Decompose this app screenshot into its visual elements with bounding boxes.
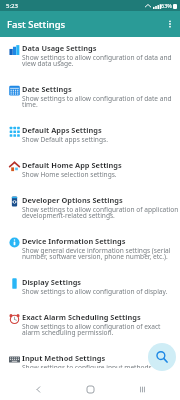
staticText: Date Settings bbox=[22, 84, 72, 94]
button[interactable]: Display Settings bbox=[0, 271, 180, 306]
button[interactable]: Back bbox=[29, 380, 47, 398]
staticText: Show settings to allow configuration of … bbox=[22, 205, 180, 220]
button[interactable]: Input Method Settings bbox=[0, 347, 180, 378]
staticText: Developer Options Settings bbox=[22, 195, 123, 205]
staticText: Default Home App Settings bbox=[22, 160, 122, 170]
button[interactable]: Device Information Settings bbox=[0, 230, 180, 271]
staticText: Input Method Settings bbox=[22, 353, 106, 363]
staticText: Show Home selection settings. bbox=[22, 170, 117, 179]
staticText: Fast Settings bbox=[7, 18, 66, 31]
button[interactable]: Home bbox=[81, 380, 99, 398]
button[interactable]: More options bbox=[160, 14, 180, 34]
staticText: Display Settings bbox=[22, 277, 82, 287]
button[interactable]: Exact Alarm Scheduling Settings bbox=[0, 306, 180, 347]
button[interactable]: Default Home App Settings bbox=[0, 154, 180, 189]
staticText: 5:23 bbox=[6, 2, 18, 10]
button[interactable]: Date Settings bbox=[0, 78, 180, 119]
staticText: Show settings to allow configuration of … bbox=[22, 287, 168, 296]
button[interactable]: Recents bbox=[133, 380, 151, 398]
button[interactable]: Developer Options Settings bbox=[0, 189, 180, 230]
staticText: Show general device information settings… bbox=[22, 246, 180, 261]
staticText: Show settings to allow configuration of … bbox=[22, 94, 180, 109]
staticText: Show settings to allow configuration of … bbox=[22, 322, 180, 337]
staticText: Show settings to allow configuration of … bbox=[22, 53, 180, 68]
button[interactable]: Default Apps Settings bbox=[0, 119, 180, 154]
button[interactable]: Search bbox=[148, 343, 176, 371]
staticText: Default Apps Settings bbox=[22, 125, 102, 135]
button[interactable]: Data Usage Settings bbox=[0, 37, 180, 78]
staticText: Show Default apps settings. bbox=[22, 135, 108, 144]
staticText: Data Usage Settings bbox=[22, 43, 97, 53]
staticText: 63% bbox=[161, 2, 172, 9]
staticText: Show settings to configure input methods… bbox=[22, 363, 180, 368]
staticText: Device Information Settings bbox=[22, 236, 126, 246]
staticText: Exact Alarm Scheduling Settings bbox=[22, 312, 141, 322]
